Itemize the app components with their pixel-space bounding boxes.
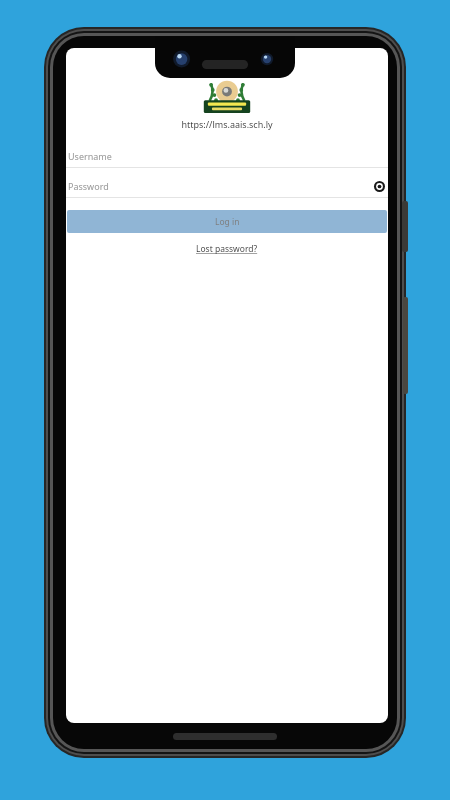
button[interactable]: Username — [66, 144, 388, 168]
staticText: Lost password? — [196, 243, 258, 255]
button[interactable]: Lost password? — [193, 241, 261, 257]
button[interactable]: Log in — [67, 210, 387, 233]
staticText: https://lms.aais.sch.ly — [181, 118, 273, 130]
button[interactable]: Password — [66, 174, 388, 198]
staticText: Username — [68, 150, 112, 162]
staticText: Log in — [215, 216, 240, 228]
staticText: Password — [68, 180, 109, 192]
button[interactable]: Show password — [372, 179, 386, 193]
